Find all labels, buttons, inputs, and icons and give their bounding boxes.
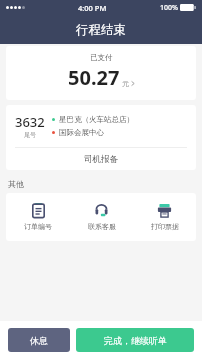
button[interactable]: 订单编号 <box>6 202 70 232</box>
staticText: 星巴克（火车站总店） <box>59 115 134 124</box>
staticText: 50.27 <box>68 64 120 91</box>
staticText: 4:00 PM <box>78 3 107 13</box>
staticText: 3632 <box>15 113 45 131</box>
staticText: 国际会展中心 <box>59 128 104 137</box>
staticText: 联系客服 <box>88 222 116 231</box>
staticText: 尾号 <box>24 131 36 139</box>
staticText: 已支付 <box>90 53 113 62</box>
staticText: 元 <box>122 79 129 88</box>
staticText: 其他 <box>8 179 24 189</box>
staticText: 行程结束 <box>76 22 126 38</box>
staticText: 打印票据 <box>151 222 179 231</box>
button[interactable]: 联系客服 <box>70 202 133 232</box>
button[interactable]: 司机报备 <box>6 148 196 170</box>
staticText: 司机报备 <box>84 154 118 165</box>
button[interactable]: 完成，继续听单 <box>76 328 194 352</box>
staticText: 100% <box>160 3 178 13</box>
button[interactable]: 打印票据 <box>133 202 196 232</box>
button[interactable]: 已支付 <box>6 46 196 100</box>
staticText: 完成，继续听单 <box>104 335 167 346</box>
staticText: 休息 <box>30 335 48 346</box>
staticText: 订单编号 <box>24 222 52 231</box>
button[interactable]: 休息 <box>8 328 70 352</box>
